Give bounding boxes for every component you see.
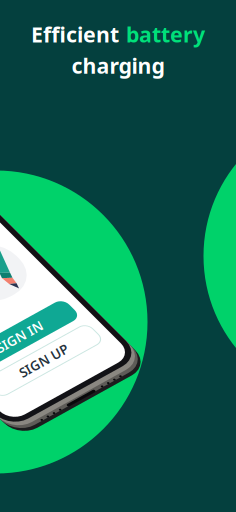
- staticText: Efficient: [31, 20, 119, 48]
- staticText: SIGN UP: [17, 352, 71, 369]
- staticText: charging: [71, 51, 164, 80]
- staticText: SIGN IN: [0, 328, 46, 345]
- staticText: battery: [126, 20, 205, 48]
